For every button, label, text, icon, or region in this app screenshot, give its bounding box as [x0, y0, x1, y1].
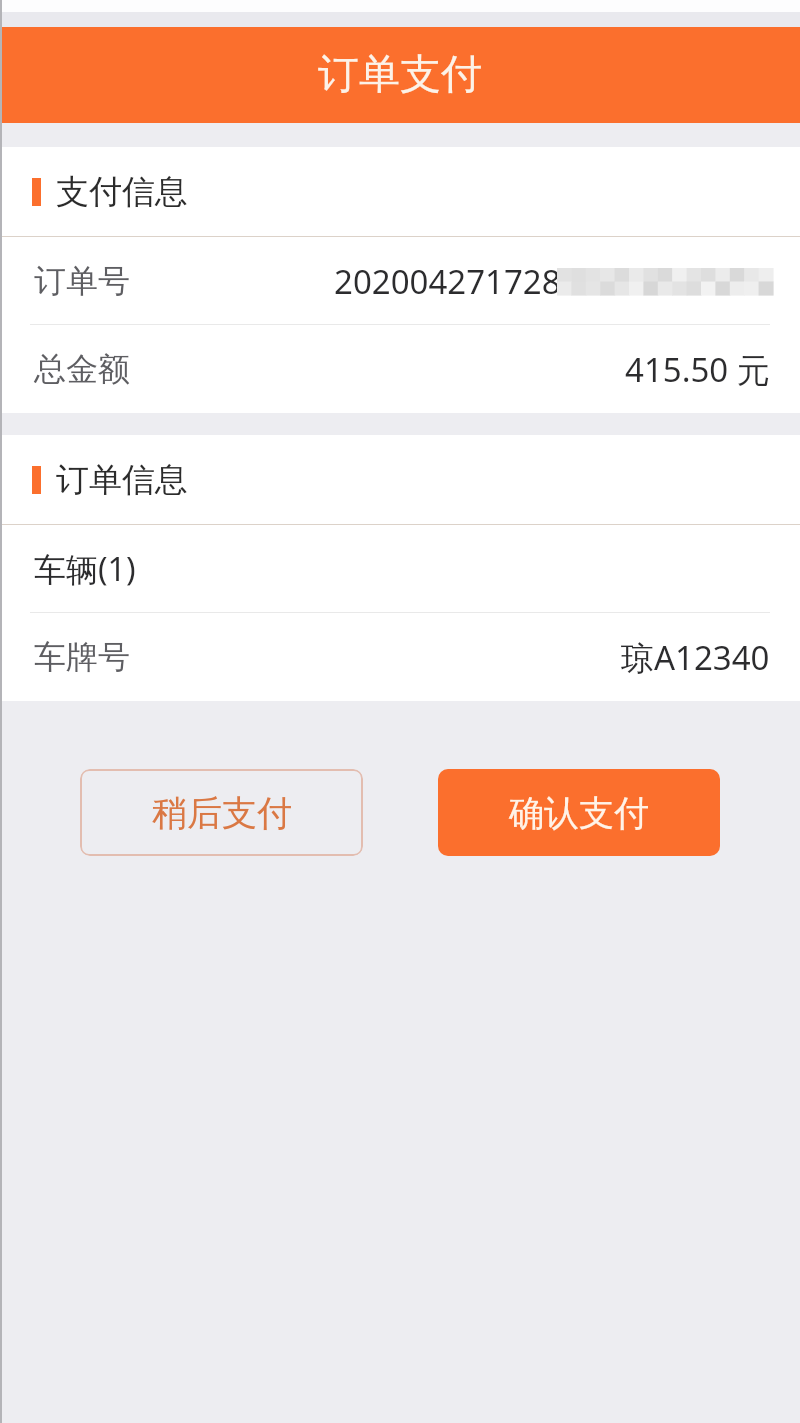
button[interactable]: 确认支付 — [438, 769, 720, 856]
staticText: 415.50 元 — [625, 347, 770, 392]
button[interactable]: 车辆(1) — [0, 525, 800, 613]
staticText: 总金额 — [34, 349, 130, 389]
other: Hidden order number — [557, 268, 773, 295]
button[interactable]: 稍后支付 — [80, 769, 363, 856]
staticText: 稍后支付 — [152, 791, 292, 835]
staticText: 琼A12340 — [621, 635, 770, 680]
button[interactable]: 总金额 — [0, 325, 800, 413]
staticText: 车辆(1) — [34, 547, 136, 591]
staticText: 支付信息 — [56, 171, 188, 213]
button[interactable]: 订单号 — [0, 237, 800, 325]
staticText: 订单支付 — [318, 49, 482, 101]
staticText: 订单号 — [34, 261, 130, 301]
staticText: 订单信息 — [56, 459, 188, 501]
staticText: 确认支付 — [509, 791, 649, 835]
staticText: 车牌号 — [34, 637, 130, 677]
staticText: 202004271728 — [334, 259, 561, 304]
button[interactable]: 车牌号 — [0, 613, 800, 701]
